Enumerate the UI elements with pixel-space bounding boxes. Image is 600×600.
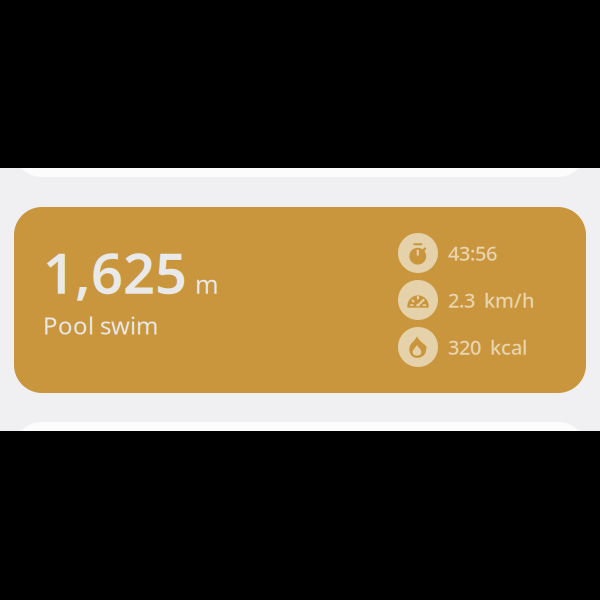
staticText: 320: [448, 334, 481, 360]
button[interactable]: Previous workout: [14, 97, 586, 177]
staticText: Pool swim: [43, 309, 158, 341]
staticText: kcal: [490, 334, 527, 360]
button[interactable]: 1,625: [14, 207, 586, 393]
staticText: 1,625: [43, 235, 187, 309]
staticText: m: [195, 267, 219, 301]
staticText: km/h: [484, 287, 535, 313]
button[interactable]: Next workout: [14, 422, 586, 502]
staticText: 43:56: [448, 240, 497, 266]
staticText: 2.3: [448, 287, 475, 313]
